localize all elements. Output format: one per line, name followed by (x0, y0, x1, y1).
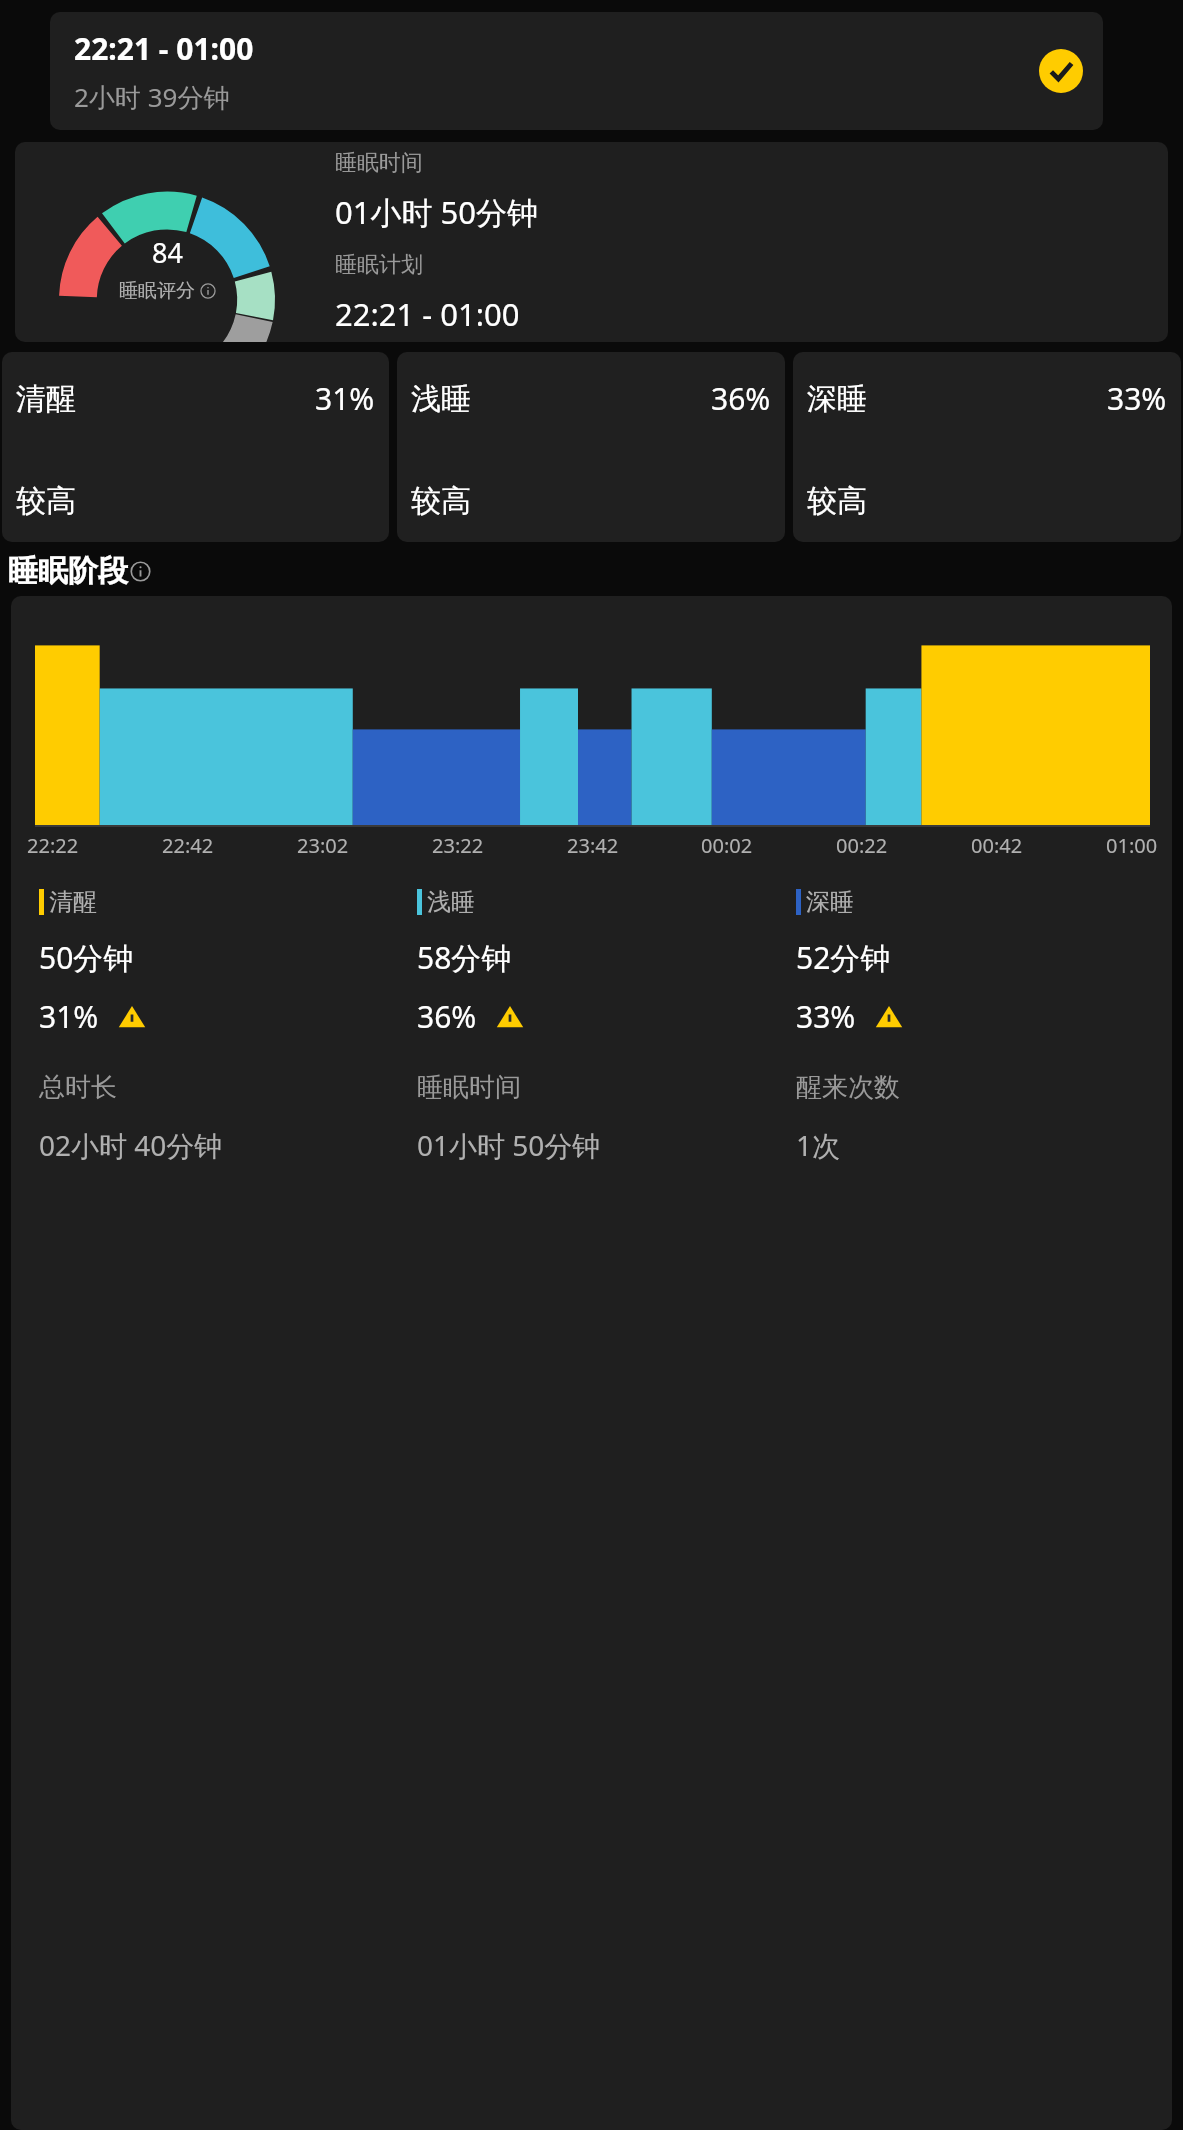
staticText: 58分钟 (417, 937, 512, 978)
button[interactable]: Completed (1039, 49, 1083, 93)
staticText: 01小时 50分钟 (335, 191, 538, 233)
button[interactable]: 深睡 (796, 887, 1156, 1037)
staticText: 00:22 (836, 832, 888, 859)
button[interactable]: 浅睡 (397, 352, 785, 542)
staticText: 23:02 (297, 832, 349, 859)
staticText: 22:21 - 01:00 (74, 28, 254, 69)
staticText: 清醒 (49, 887, 97, 917)
staticText: 1次 (796, 1126, 841, 1164)
staticText: 52分钟 (796, 937, 891, 978)
staticText: 50分钟 (39, 937, 134, 978)
staticText: 23:22 (432, 832, 484, 859)
staticText: 较高 (411, 482, 471, 520)
staticText: 33% (796, 996, 856, 1037)
button[interactable]: 睡眠阶段 (8, 552, 151, 590)
staticText: 84 (152, 234, 183, 271)
button[interactable]: 清醒 (2, 352, 389, 542)
staticText: 浅睡 (411, 380, 471, 418)
staticText: 00:42 (971, 832, 1023, 859)
staticText: 2小时 39分钟 (74, 79, 230, 115)
button[interactable]: 浅睡 (417, 887, 796, 1037)
staticText: 02小时 40分钟 (39, 1126, 223, 1164)
staticText: 31% (315, 378, 375, 419)
staticText: 总时长 (39, 1071, 117, 1104)
staticText: 深睡 (807, 380, 867, 418)
staticText: 01:00 (1106, 832, 1158, 859)
staticText: 睡眠时间 (417, 1071, 521, 1104)
staticText: 睡眠评分 (119, 279, 195, 303)
staticText: 22:22 (27, 832, 79, 859)
staticText: 36% (711, 378, 771, 419)
staticText: 36% (417, 996, 477, 1037)
button[interactable]: 84 (15, 142, 1168, 342)
staticText: 23:42 (567, 832, 619, 859)
staticText: 睡眠阶段 (8, 552, 128, 590)
staticText: 较高 (807, 482, 867, 520)
staticText: 01小时 50分钟 (417, 1126, 601, 1164)
staticText: 清醒 (16, 380, 76, 418)
staticText: 00:02 (701, 832, 753, 859)
staticText: 较高 (16, 482, 76, 520)
staticText: 22:42 (162, 832, 214, 859)
staticText: 浅睡 (427, 887, 475, 917)
staticText: 31% (39, 996, 99, 1037)
button[interactable]: 深睡 (793, 352, 1181, 542)
button[interactable]: 清醒 (39, 887, 417, 1037)
button[interactable]: 22:21 - 01:00 (50, 12, 1103, 130)
staticText: 33% (1107, 378, 1167, 419)
staticText: 22:21 - 01:00 (335, 293, 520, 335)
staticText: 深睡 (806, 887, 854, 917)
staticText: 醒来次数 (796, 1071, 900, 1104)
staticText: 睡眠计划 (335, 251, 423, 279)
staticText: 睡眠时间 (335, 149, 423, 177)
